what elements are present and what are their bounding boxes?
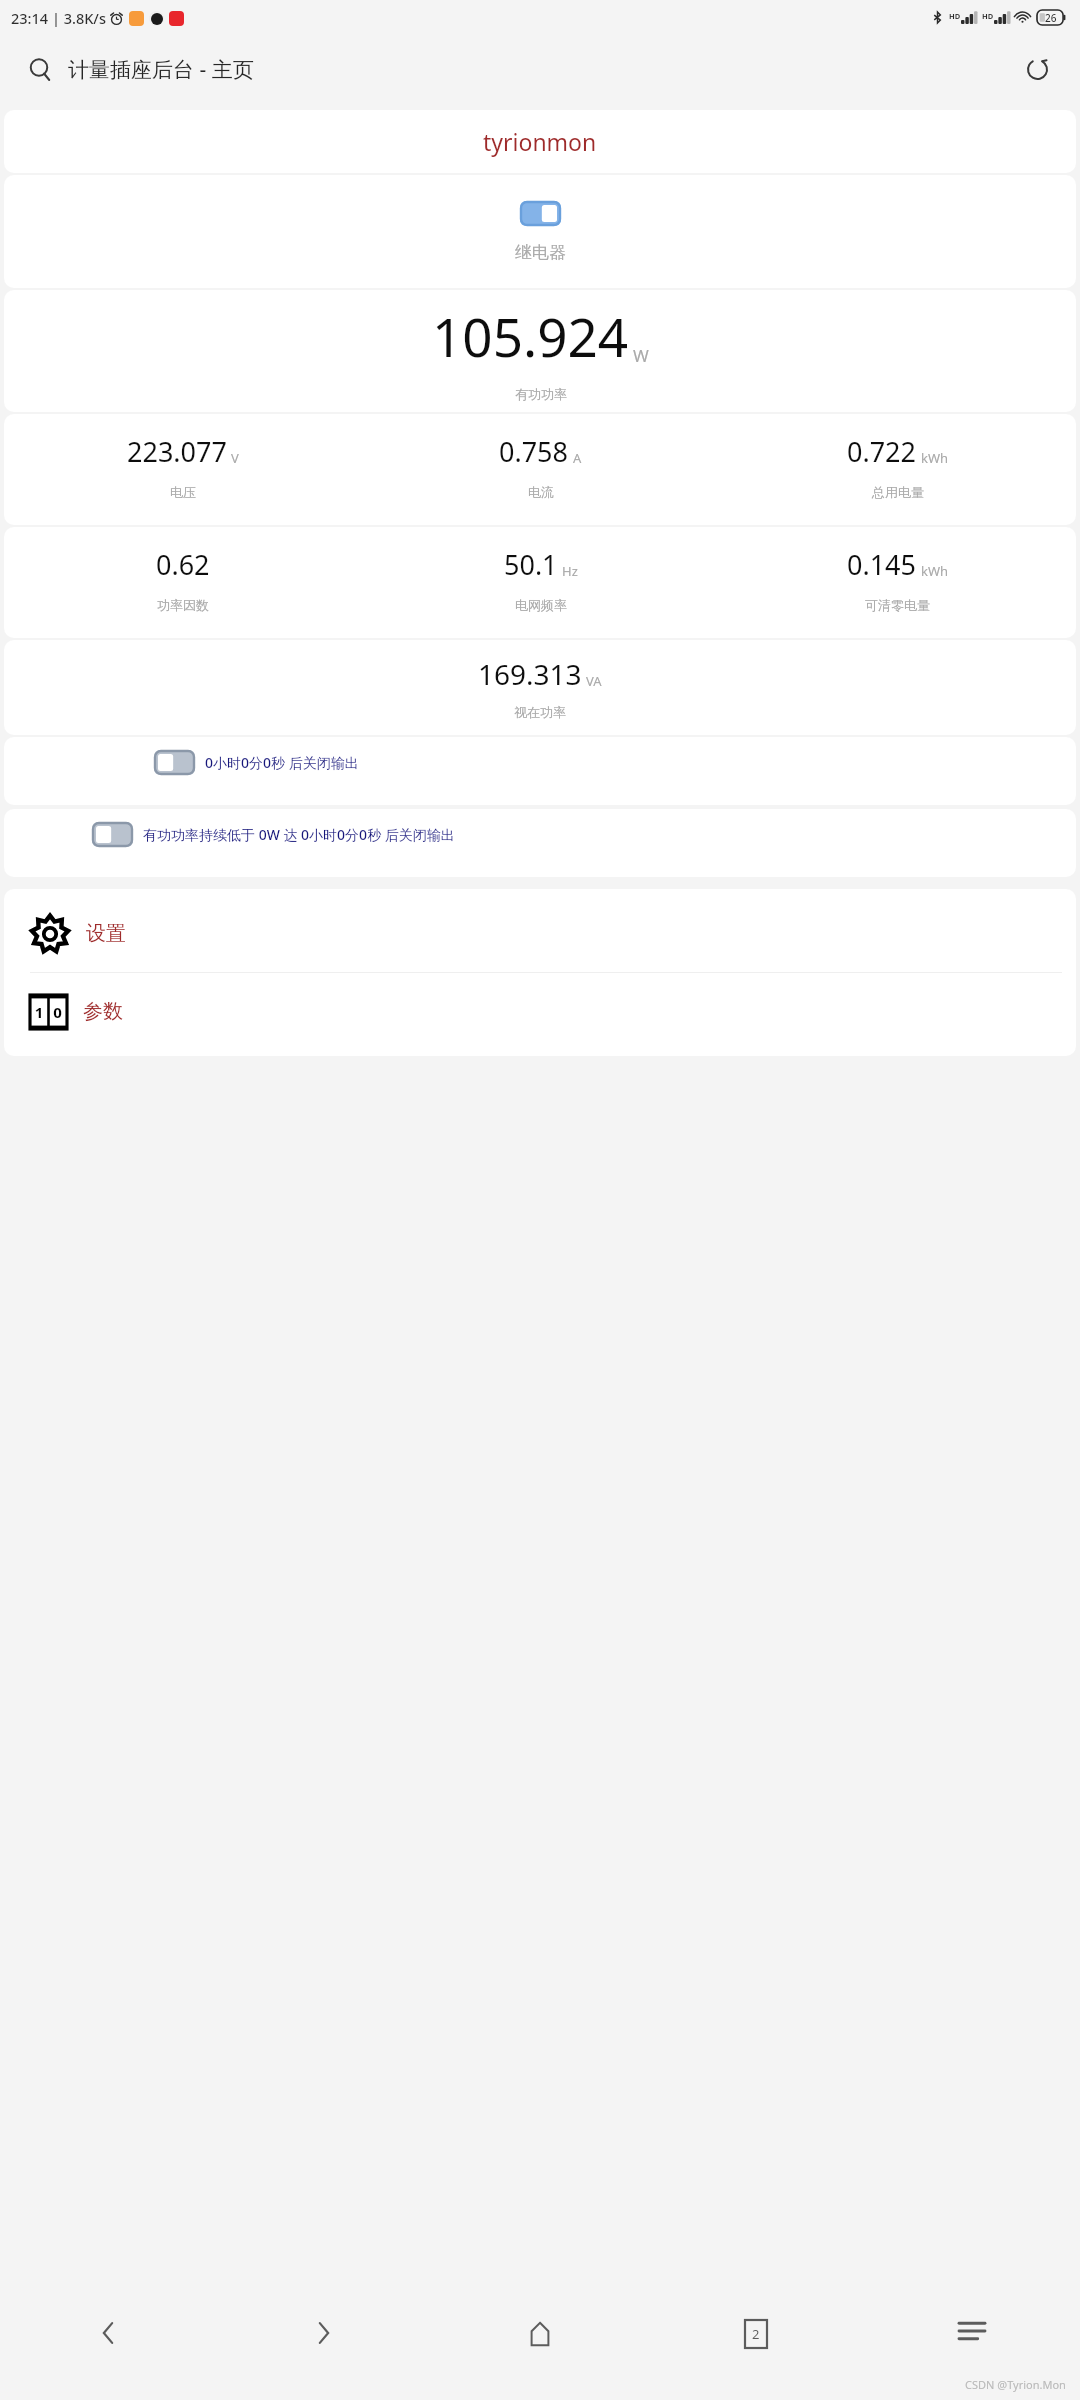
staticText: 223.077 (127, 433, 227, 470)
staticText: 105.924 (432, 300, 629, 372)
staticText: 2 (752, 2325, 760, 2343)
button[interactable]: Search (20, 49, 60, 89)
button[interactable]: Forward (216, 2320, 432, 2400)
staticText: 0.758 (499, 433, 569, 470)
button[interactable]: Toggle (4, 737, 1076, 805)
button[interactable]: Toggle (92, 822, 133, 847)
button[interactable]: Back (0, 2320, 216, 2400)
staticText: CSDN @Tyrion.Mon (965, 2377, 1066, 2392)
staticText: 0.722 (847, 433, 917, 470)
staticText: Hz (562, 562, 578, 580)
staticText: 0小时0分0秒 后关闭输出 (205, 753, 359, 772)
staticText: kWh (921, 562, 949, 580)
staticText: 参数 (83, 999, 123, 1024)
staticText: 50.1 (504, 546, 558, 583)
staticText: 有功功率 (515, 386, 567, 402)
staticText: 有功功率持续低于 0W 达 0小时0分0秒 后关闭输出 (143, 825, 455, 844)
staticText: 0 (48, 1002, 67, 1022)
staticText: 视在功率 (514, 704, 566, 720)
staticText: A (573, 449, 582, 467)
staticText: 169.313 (478, 655, 582, 693)
staticText: HD (949, 11, 961, 21)
staticText: kWh (921, 449, 949, 467)
staticText: 总用电量 (872, 484, 924, 500)
staticText: 0.62 (156, 546, 210, 583)
staticText: HD (982, 11, 994, 21)
staticText: 23:14 | 3.8K/s (11, 8, 106, 28)
staticText: tyrionmon (483, 126, 597, 157)
button[interactable]: Home (432, 2320, 648, 2400)
staticText: 26 (1045, 11, 1057, 25)
button[interactable]: 设置 (4, 895, 1076, 972)
staticText: 0.145 (847, 546, 917, 583)
button[interactable]: Toggle (520, 201, 561, 226)
staticText: 电网频率 (515, 597, 567, 613)
staticText: W (633, 344, 649, 367)
staticText: 继电器 (515, 242, 566, 263)
button[interactable]: Toggle (154, 750, 195, 775)
staticText: 计量插座后台 - 主页 (68, 55, 254, 84)
button[interactable]: Refresh (1016, 48, 1058, 90)
staticText: 1 (30, 1002, 48, 1022)
button[interactable]: Toggle (4, 809, 1076, 877)
staticText: 功率因数 (157, 597, 209, 613)
button[interactable]: Tabs (648, 2320, 864, 2400)
staticText: 设置 (86, 921, 126, 946)
staticText: 电压 (170, 484, 196, 500)
button[interactable]: Menu (864, 2320, 1080, 2400)
staticText: 电流 (528, 484, 554, 500)
staticText: 可清零电量 (865, 597, 930, 613)
staticText: V (231, 449, 239, 467)
staticText: VA (586, 672, 602, 690)
button[interactable]: 1 (4, 973, 1076, 1050)
